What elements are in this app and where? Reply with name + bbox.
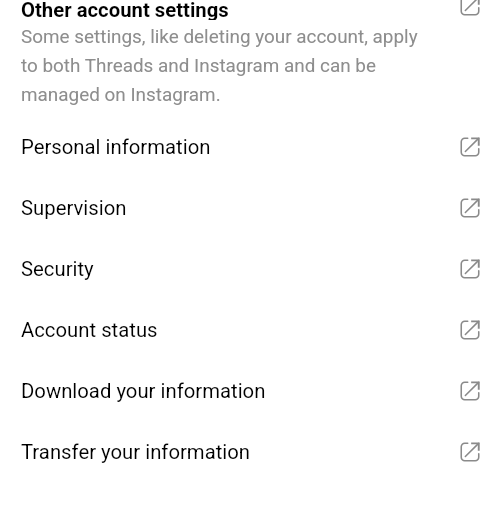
button[interactable]: Download your information [0, 360, 500, 421]
staticText: Security [21, 257, 94, 281]
button[interactable]: Security [0, 238, 500, 299]
other: Open in new window [460, 0, 480, 16]
button[interactable]: Other account settings [0, 0, 500, 22]
button[interactable]: Personal information [0, 116, 500, 177]
button[interactable]: Supervision [0, 177, 500, 238]
staticText: Personal information [21, 135, 211, 159]
staticText: Account status [21, 318, 158, 342]
staticText: Other account settings [21, 0, 229, 20]
button[interactable]: Transfer your information [0, 421, 500, 482]
staticText: Supervision [21, 196, 127, 220]
staticText: Transfer your information [21, 440, 251, 464]
staticText: Some settings, like deleting your accoun… [21, 25, 430, 106]
staticText: Download your information [21, 379, 266, 403]
button[interactable]: Account status [0, 299, 500, 360]
